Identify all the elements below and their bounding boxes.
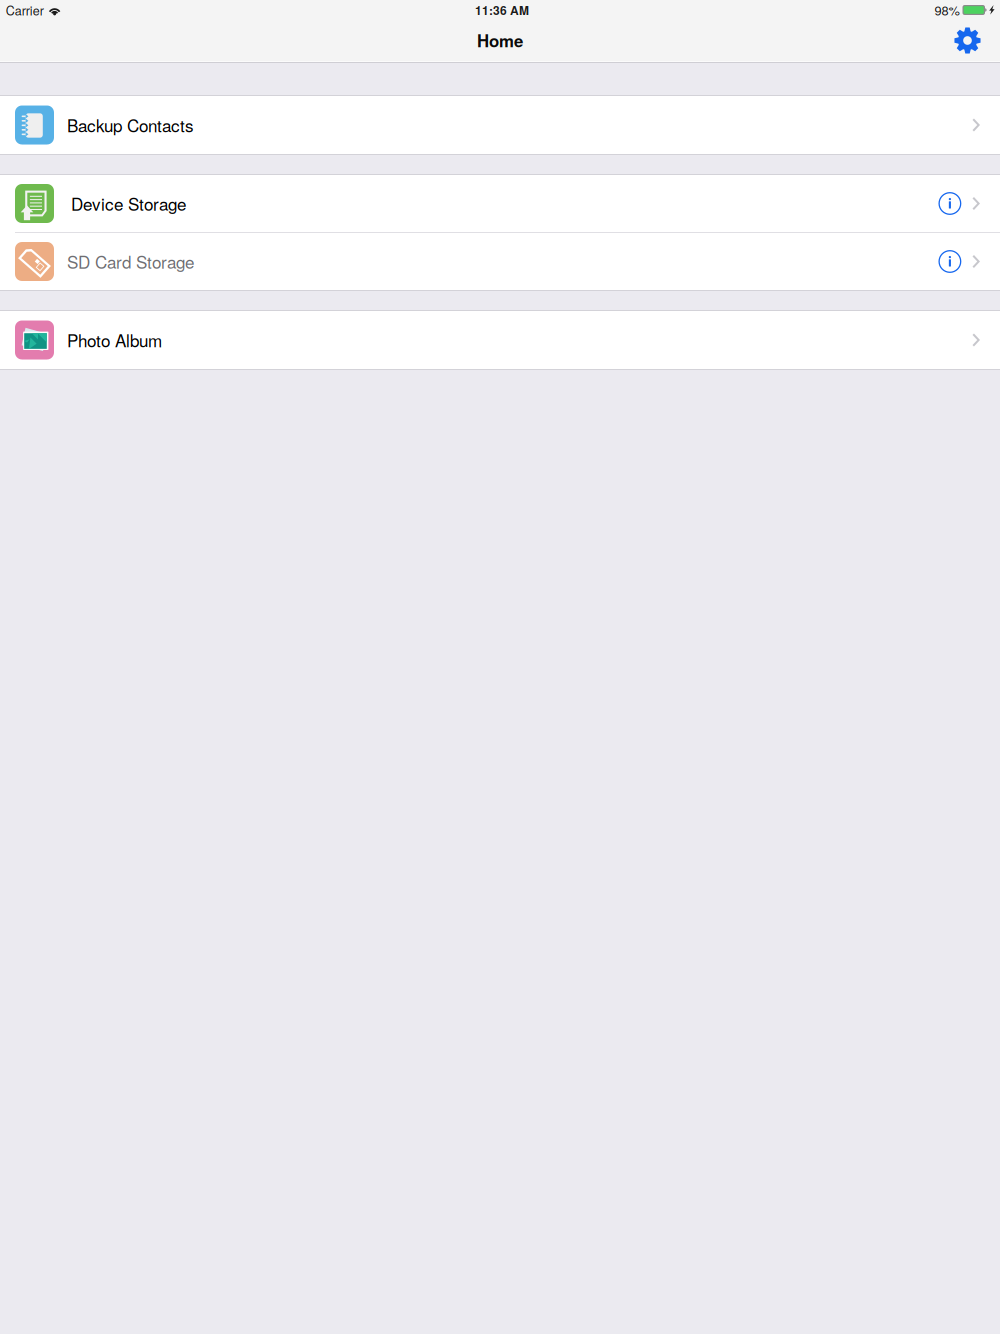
staticText: 98% bbox=[934, 1, 959, 19]
staticText: Carrier bbox=[6, 1, 44, 19]
staticText: SD Card Storage bbox=[67, 249, 194, 274]
staticText: Device Storage bbox=[71, 191, 186, 216]
staticText: Home bbox=[477, 28, 523, 53]
staticText: Photo Album bbox=[67, 328, 162, 352]
button[interactable]: Settings bbox=[944, 20, 991, 61]
button[interactable]: Photo Album bbox=[0, 311, 1000, 369]
button[interactable]: Backup Contacts bbox=[0, 96, 1000, 154]
staticText: Backup Contacts bbox=[67, 113, 194, 137]
staticText: 11:36 AM bbox=[475, 1, 529, 19]
button[interactable]: SD Card Storage bbox=[0, 233, 1000, 290]
button[interactable]: Device Storage bbox=[0, 175, 1000, 232]
